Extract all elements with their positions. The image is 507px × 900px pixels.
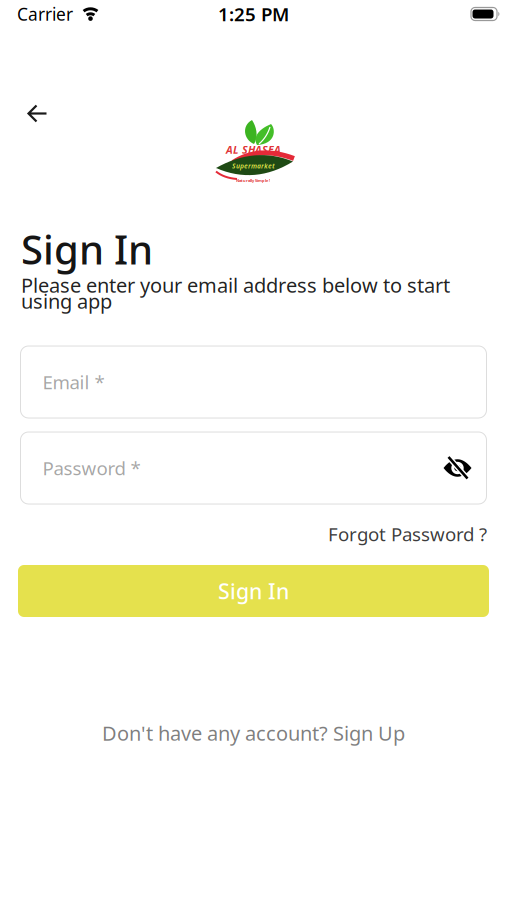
staticText: Supermarket bbox=[232, 162, 275, 170]
staticText: AL SHASEA bbox=[226, 142, 281, 157]
staticText: Forgot Password ? bbox=[328, 522, 487, 546]
staticText: Carrier bbox=[17, 2, 73, 25]
staticText: Sign In bbox=[21, 222, 153, 275]
button[interactable]: Password bbox=[20, 432, 486, 504]
staticText: 1:25 PM bbox=[218, 2, 289, 26]
staticText: Naturally Simple ! bbox=[236, 178, 270, 183]
button[interactable]: Sign In bbox=[18, 565, 489, 617]
staticText: using app bbox=[21, 288, 112, 314]
staticText: Don't have any account? Sign Up bbox=[102, 720, 405, 746]
button[interactable]: Don't have any account? Sign Up bbox=[102, 720, 405, 746]
button[interactable]: Email bbox=[20, 346, 486, 418]
button[interactable]: Forgot Password ? bbox=[0, 522, 507, 546]
button[interactable]: Back bbox=[27, 104, 48, 122]
staticText: Please enter your email address below to… bbox=[21, 272, 450, 298]
button[interactable]: Show password bbox=[443, 456, 472, 479]
staticText: Password * bbox=[42, 456, 140, 480]
staticText: Email * bbox=[42, 370, 104, 394]
staticText: Sign In bbox=[218, 577, 289, 605]
